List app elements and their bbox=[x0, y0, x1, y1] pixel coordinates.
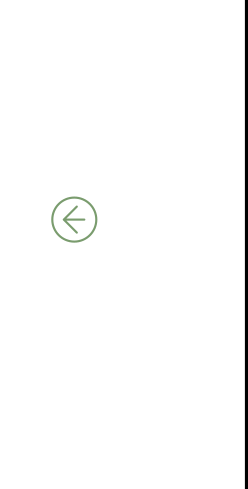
button[interactable]: Back bbox=[52, 198, 96, 242]
